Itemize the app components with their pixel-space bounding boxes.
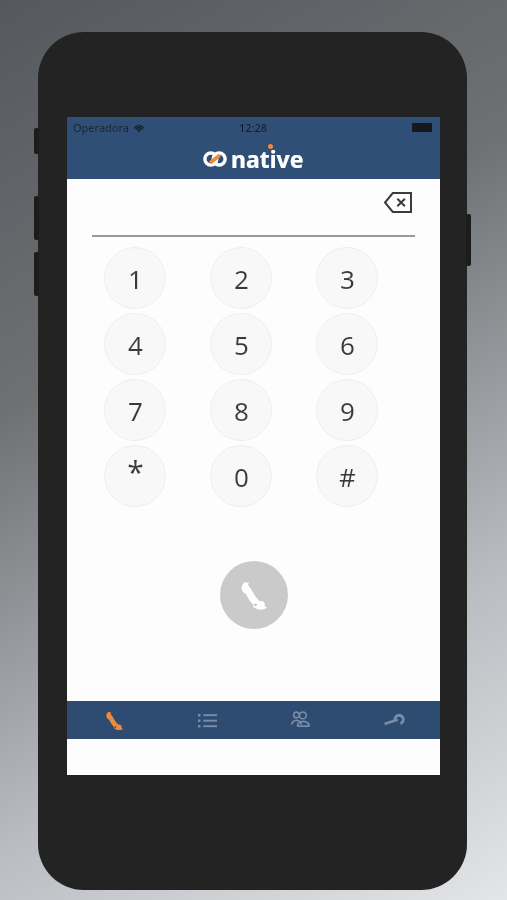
staticText: 8 xyxy=(234,393,249,428)
button[interactable]: 3 xyxy=(316,247,378,309)
button[interactable]: Call log xyxy=(161,701,253,739)
staticText: 5 xyxy=(234,327,249,362)
staticText: * xyxy=(127,451,144,492)
button[interactable]: Contacts xyxy=(254,701,346,739)
staticText: # xyxy=(339,459,356,494)
staticText: Operadora xyxy=(73,120,129,135)
button[interactable]: 2 xyxy=(210,247,272,309)
button[interactable]: 7 xyxy=(104,379,166,441)
staticText: 3 xyxy=(340,261,355,296)
staticText: 0 xyxy=(234,459,249,494)
button[interactable]: * xyxy=(104,445,166,507)
button[interactable]: 6 xyxy=(316,313,378,375)
button[interactable]: 5 xyxy=(210,313,272,375)
staticText: 6 xyxy=(340,327,355,362)
button[interactable]: 1 xyxy=(104,247,166,309)
staticText: 12:28 xyxy=(239,120,268,135)
button[interactable]: 8 xyxy=(210,379,272,441)
button[interactable]: # xyxy=(316,445,378,507)
staticText: 2 xyxy=(234,261,249,296)
button[interactable]: 0 xyxy=(210,445,272,507)
staticText: 4 xyxy=(128,327,143,362)
staticText: 9 xyxy=(340,393,355,428)
button[interactable]: 9 xyxy=(316,379,378,441)
staticText: native xyxy=(231,143,304,174)
button[interactable]: Dialer xyxy=(68,701,160,739)
button[interactable]: 4 xyxy=(104,313,166,375)
staticText: 7 xyxy=(128,393,143,428)
button[interactable]: Backspace xyxy=(381,189,415,215)
button[interactable]: Call xyxy=(220,561,288,629)
staticText: 1 xyxy=(128,261,143,296)
button[interactable]: Settings xyxy=(347,701,439,739)
